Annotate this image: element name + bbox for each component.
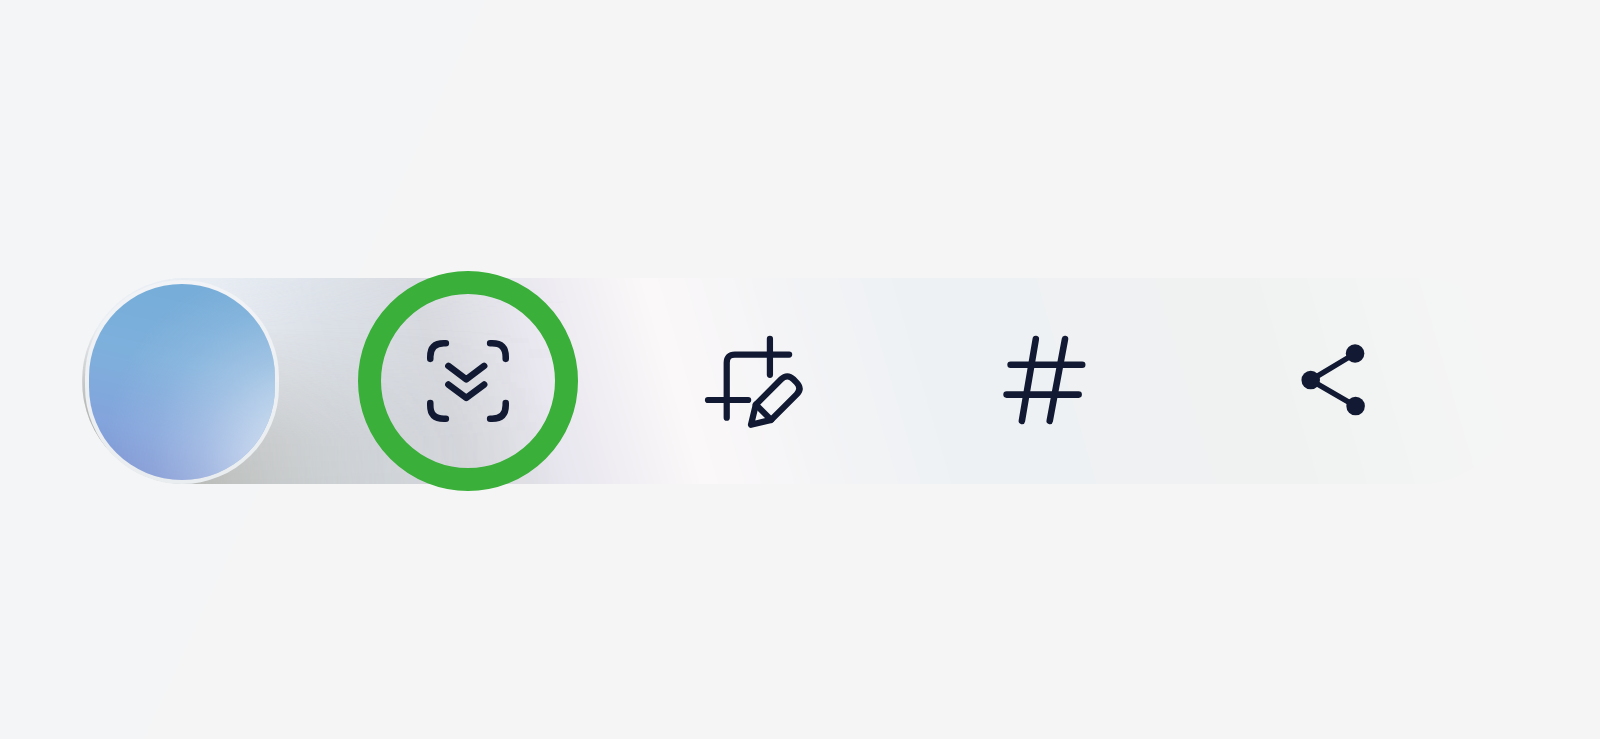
button[interactable]: Profile [89,284,275,480]
button[interactable]: Tags [975,310,1115,450]
button[interactable]: Share [1263,310,1403,450]
button[interactable]: Markup [686,312,826,452]
button[interactable]: Scan [358,271,578,491]
